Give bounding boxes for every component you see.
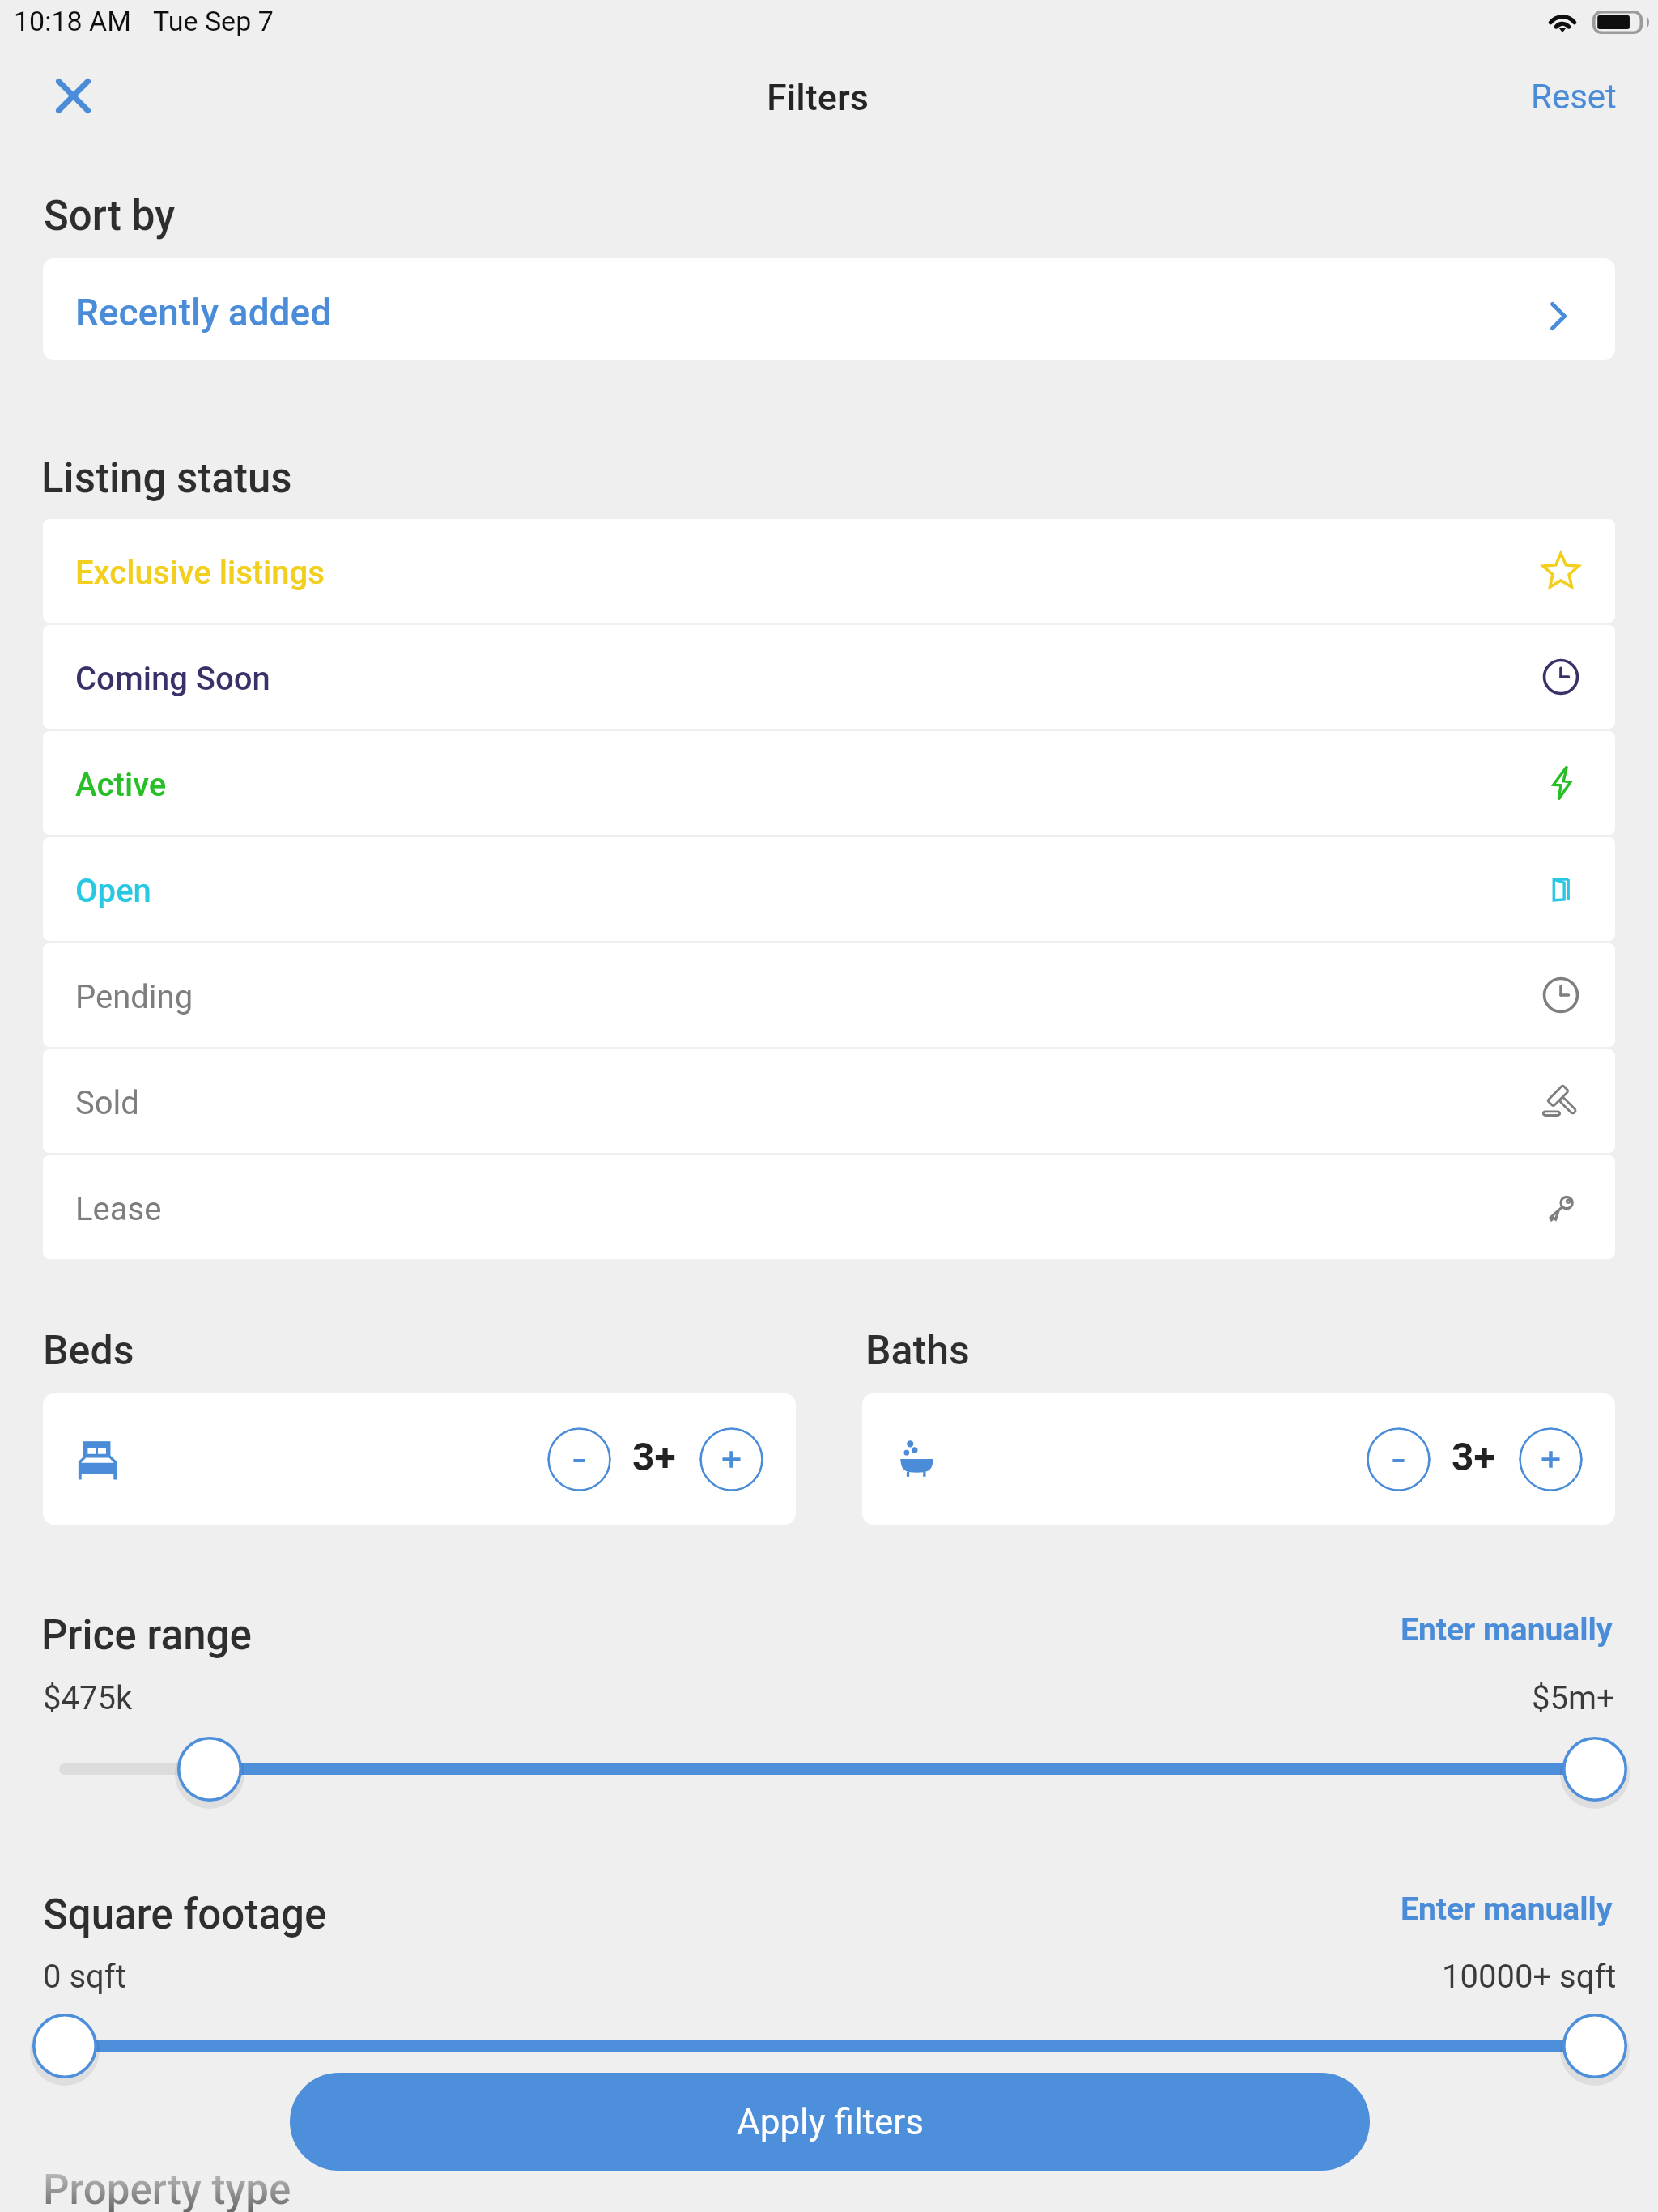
button[interactable]: Exclusive listings (43, 519, 1615, 623)
staticText: 10:18 AM (14, 5, 131, 37)
staticText: Reset (1531, 77, 1617, 117)
staticText: Filters (767, 76, 869, 119)
staticText: Lease (75, 1190, 162, 1228)
staticText: Apply filters (737, 2101, 924, 2143)
button[interactable]: Sold (43, 1049, 1615, 1153)
staticText: Sort by (44, 192, 175, 240)
button[interactable]: Open (43, 837, 1615, 941)
button[interactable]: Lease (43, 1155, 1615, 1259)
staticText: Listing status (41, 454, 292, 503)
staticText: Pending (75, 978, 193, 1016)
staticText: 10000+ sqft (1442, 1958, 1617, 1996)
button[interactable]: Coming Soon (43, 625, 1615, 729)
staticText: Enter manually (1401, 1891, 1613, 1928)
staticText: Active (75, 766, 167, 804)
button[interactable]: Recently added (43, 258, 1615, 360)
staticText: Sold (75, 1084, 139, 1122)
staticText: Tue Sep 7 (153, 5, 274, 37)
staticText: $475k (43, 1679, 133, 1717)
button[interactable]: Increase (1519, 1427, 1583, 1491)
staticText: Square footage (43, 1891, 327, 1939)
staticText: 0 sqft (43, 1958, 126, 1996)
button[interactable]: Active (43, 731, 1615, 835)
staticText: $5m+ (1532, 1679, 1615, 1717)
button[interactable]: Pending (43, 943, 1615, 1047)
button[interactable]: Close (45, 67, 102, 124)
button[interactable]: Apply filters (290, 2073, 1370, 2171)
staticText: Property type (43, 2166, 291, 2212)
staticText: 3+ (632, 1434, 676, 1479)
staticText: Recently added (75, 291, 332, 334)
staticText: Open (75, 872, 151, 910)
button[interactable]: Reset (1531, 72, 1617, 112)
staticText: Exclusive listings (75, 554, 325, 592)
staticText: 3+ (1452, 1434, 1495, 1479)
button[interactable]: Decrease (1367, 1427, 1431, 1491)
button[interactable]: Enter manually (1382, 1875, 1631, 1943)
staticText: Beds (43, 1327, 134, 1375)
staticText: Baths (865, 1327, 970, 1375)
staticText: Price range (41, 1611, 252, 1660)
button[interactable]: Enter manually (1382, 1596, 1631, 1664)
button[interactable]: Increase (699, 1427, 763, 1491)
button[interactable]: Decrease (547, 1427, 611, 1491)
staticText: Coming Soon (75, 660, 270, 698)
staticText: Enter manually (1401, 1611, 1613, 1648)
